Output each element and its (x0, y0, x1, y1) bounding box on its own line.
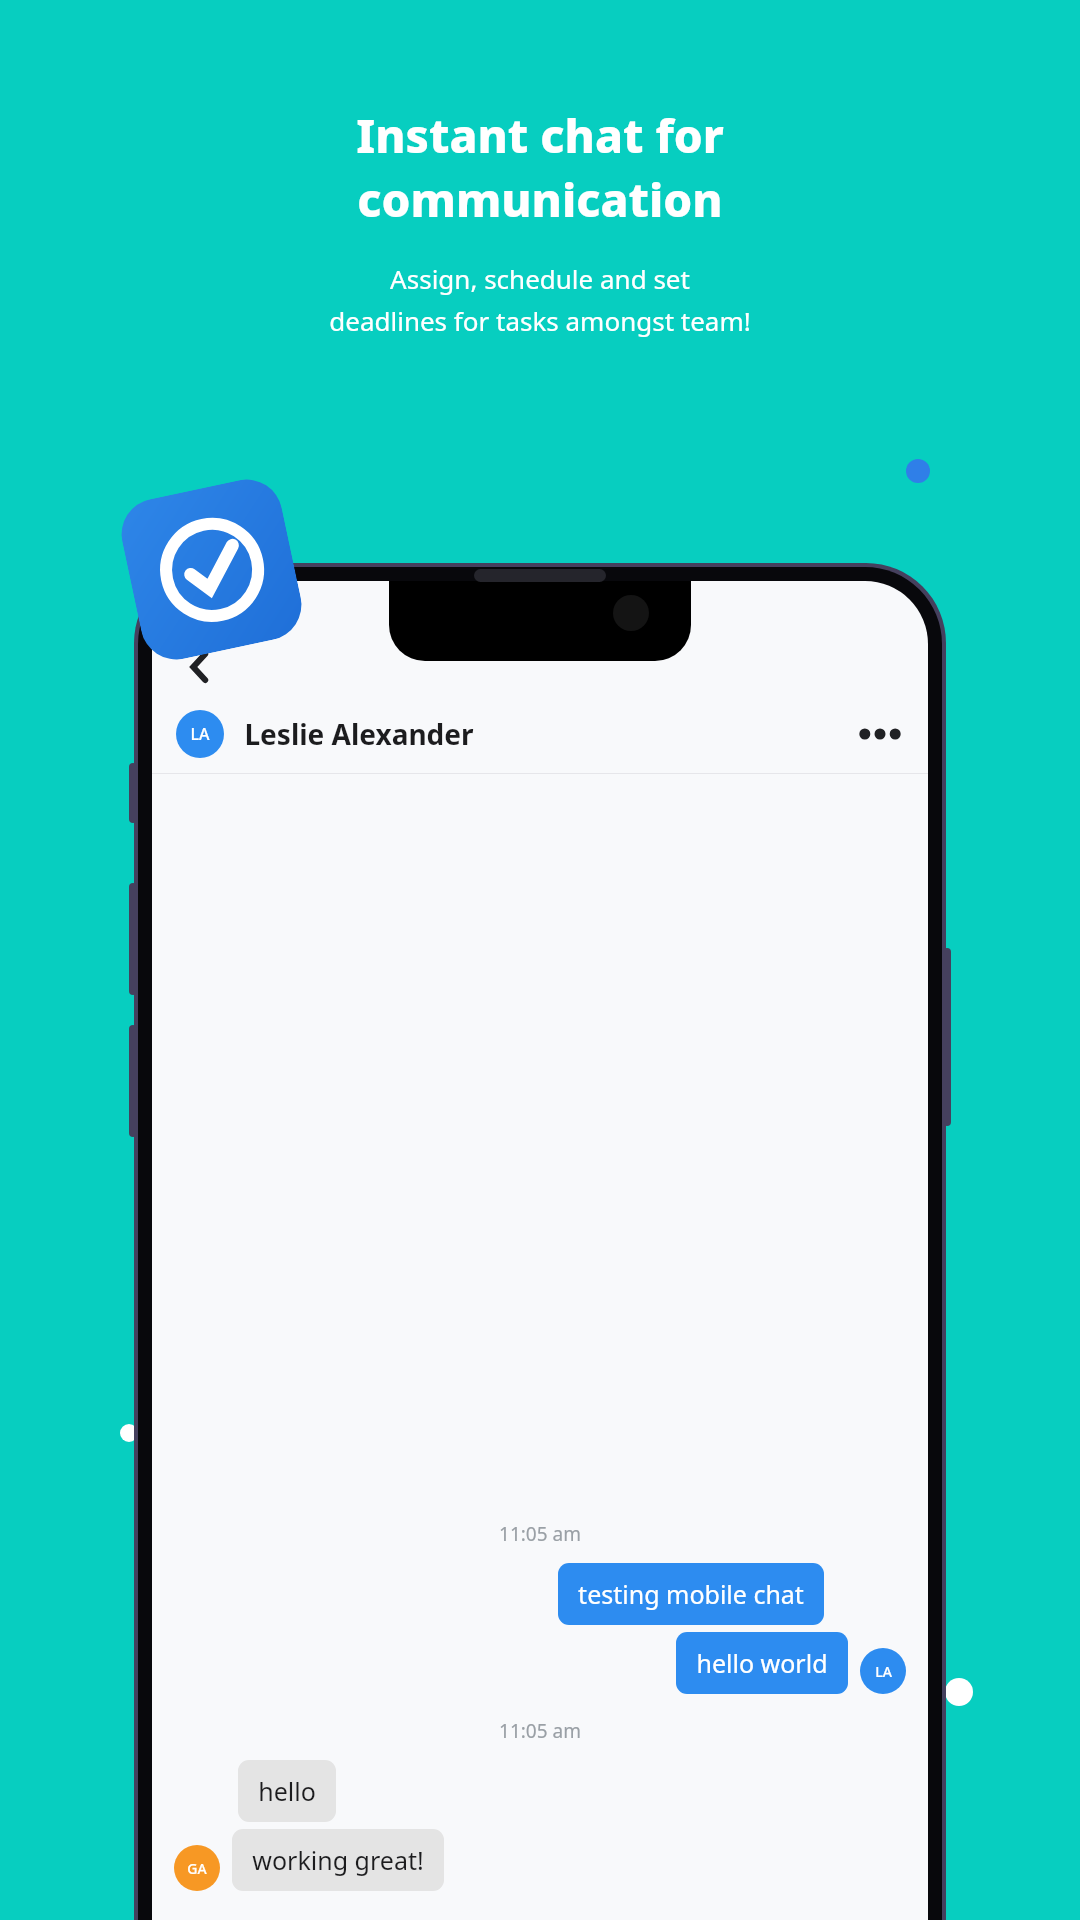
button[interactable]: Back (172, 639, 228, 695)
staticText: working great! (252, 1843, 424, 1877)
staticText: 11:05 am (152, 1521, 928, 1547)
button[interactable]: hello world (676, 1632, 848, 1694)
staticText: GA (187, 1859, 207, 1878)
button[interactable]: Avatar GA (174, 1845, 220, 1891)
button[interactable]: Avatar LA (152, 695, 928, 773)
button[interactable]: hello (238, 1760, 336, 1822)
button[interactable]: Avatar LA (860, 1648, 906, 1694)
button[interactable]: testing mobile chat (558, 1563, 824, 1625)
staticText: hello world (696, 1646, 828, 1680)
button[interactable]: More options (846, 700, 914, 768)
staticText: testing mobile chat (578, 1577, 804, 1611)
button[interactable]: Avatar LA (176, 710, 224, 758)
staticText: Leslie Alexander (244, 715, 474, 753)
button[interactable]: App logo checkmark (115, 473, 308, 666)
staticText: LA (190, 723, 210, 745)
staticText: hello (258, 1774, 316, 1808)
button[interactable]: working great! (232, 1829, 444, 1891)
staticText: 11:05 am (152, 1718, 928, 1744)
staticText: Assign, schedule and set deadlines for t… (329, 261, 751, 339)
staticText: Instant chat for communication (356, 104, 724, 231)
staticText: LA (875, 1662, 892, 1681)
